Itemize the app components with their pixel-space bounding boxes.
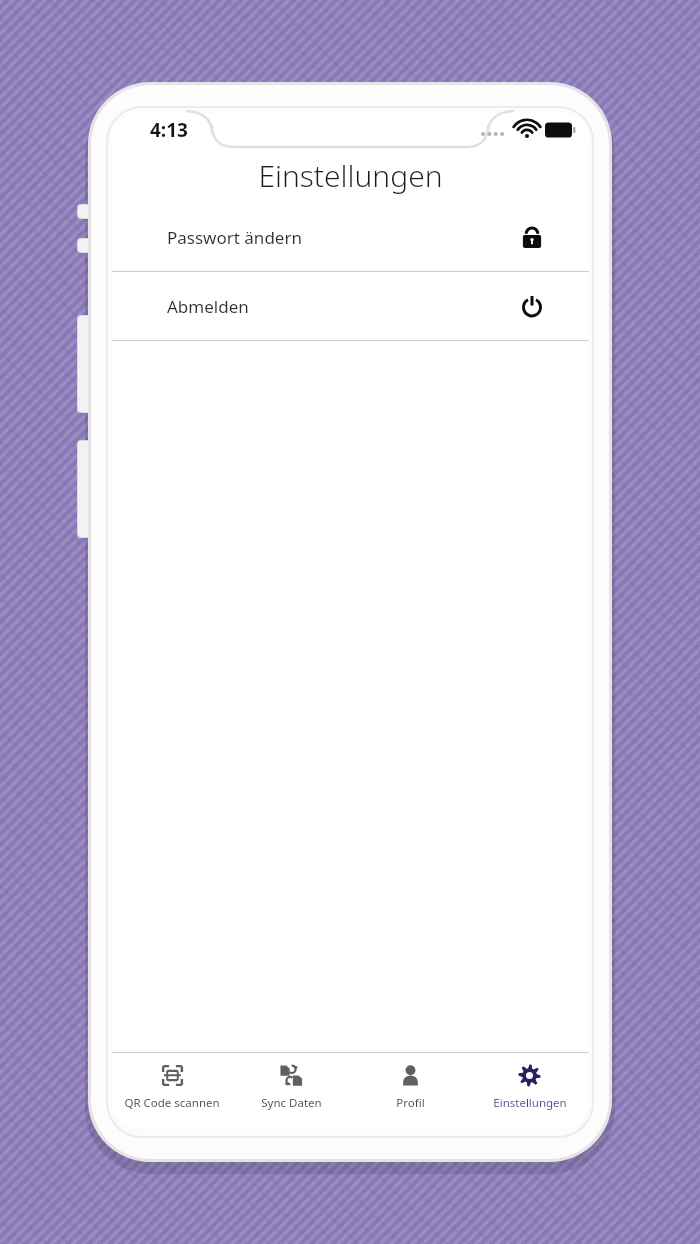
staticText: Einstellungen — [493, 1095, 567, 1111]
button[interactable]: Einstellungen — [470, 1053, 589, 1128]
other: Einstellungen — [518, 1064, 541, 1087]
other: QR Code scannen — [161, 1064, 184, 1087]
button[interactable]: QR Code scannen — [112, 1053, 232, 1128]
button[interactable]: Abmelden — [112, 272, 589, 340]
button[interactable]: Sync Daten — [232, 1053, 351, 1128]
staticText: 4:13 — [150, 117, 188, 143]
staticText: Profil — [396, 1095, 425, 1111]
button[interactable]: Profil — [351, 1053, 470, 1128]
staticText: Sync Daten — [261, 1095, 322, 1111]
staticText: QR Code scannen — [124, 1095, 220, 1111]
button[interactable]: Passwort ändern — [112, 203, 589, 271]
staticText: Abmelden — [167, 295, 249, 318]
other: Profil — [399, 1064, 422, 1087]
staticText: Passwort ändern — [167, 226, 302, 249]
staticText: Einstellungen — [258, 155, 443, 196]
other: Sync Daten — [280, 1064, 303, 1087]
